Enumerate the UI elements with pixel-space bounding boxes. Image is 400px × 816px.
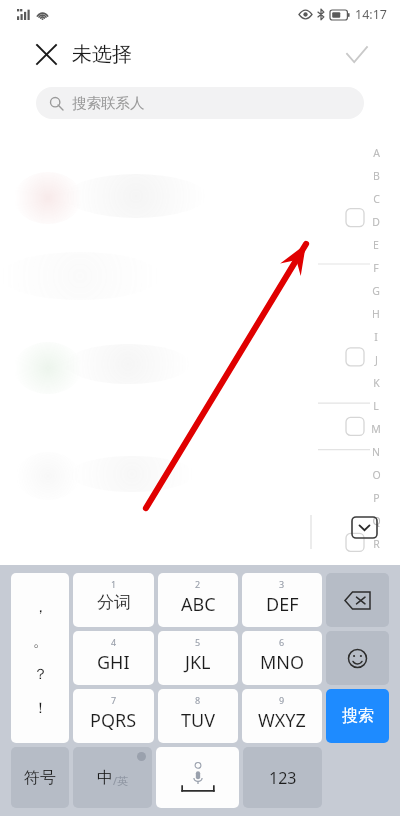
button[interactable]: O — [369, 463, 383, 486]
staticText: 7 — [111, 694, 117, 706]
button[interactable]: 搜索联系人 — [36, 87, 364, 119]
button[interactable]: A — [369, 141, 383, 164]
button[interactable]: 搜索 — [326, 689, 389, 743]
staticText: 搜索联系人 — [72, 94, 145, 112]
staticText: TUV — [181, 708, 215, 733]
staticText: 6 — [279, 636, 285, 648]
button[interactable]: 关闭 — [30, 38, 62, 70]
staticText: F — [373, 261, 379, 275]
button[interactable]: 3 — [242, 573, 322, 627]
staticText: N — [372, 445, 380, 459]
button[interactable]: 6 — [242, 631, 322, 685]
other: 退格 — [326, 573, 389, 627]
staticText: /英 — [113, 773, 129, 788]
staticText: 2 — [195, 578, 201, 590]
button[interactable]: H — [369, 302, 383, 325]
button[interactable]: 7 — [73, 689, 154, 743]
staticText: GHI — [97, 650, 130, 675]
staticText: ABC — [181, 592, 216, 617]
staticText: J — [375, 353, 378, 367]
button[interactable]: 1 — [73, 573, 154, 627]
button[interactable]: M — [369, 417, 383, 440]
button[interactable]: 9 — [242, 689, 322, 743]
staticText: D — [372, 215, 380, 229]
button[interactable]: N — [369, 440, 383, 463]
staticText: K — [373, 376, 380, 390]
staticText: 14:17 — [355, 6, 387, 23]
staticText: 搜索 — [342, 706, 374, 726]
staticText: L — [373, 399, 379, 413]
staticText: O — [372, 468, 381, 482]
staticText: ？ — [33, 665, 48, 684]
staticText: ， — [33, 598, 48, 617]
other: 空格 — [156, 747, 239, 808]
staticText: Q — [372, 514, 381, 528]
button[interactable]: 空格 — [156, 747, 239, 808]
button[interactable]: F — [369, 256, 383, 279]
button[interactable]: B — [369, 164, 383, 187]
button[interactable]: G — [369, 279, 383, 302]
button[interactable]: J — [369, 348, 383, 371]
button[interactable]: 退格 — [326, 573, 389, 627]
staticText: P — [373, 491, 380, 505]
staticText: 5 — [195, 636, 201, 648]
staticText: I — [374, 330, 378, 344]
staticText: 123 — [269, 767, 297, 789]
staticText: ！ — [33, 699, 48, 718]
button[interactable]: 符号 — [11, 747, 69, 808]
staticText: R — [373, 537, 380, 551]
button[interactable]: L — [369, 394, 383, 417]
staticText: 4 — [111, 636, 117, 648]
staticText: 3 — [279, 578, 285, 590]
staticText: A — [373, 146, 380, 160]
staticText: DEF — [266, 592, 299, 617]
button[interactable]: K — [369, 371, 383, 394]
staticText: 1 — [111, 578, 117, 590]
button[interactable]: 123 — [243, 747, 322, 808]
button[interactable]: 8 — [158, 689, 238, 743]
button[interactable]: 中 — [73, 747, 152, 808]
button[interactable]: Q — [369, 509, 383, 532]
other: 表情 — [326, 631, 389, 685]
button[interactable]: 表情 — [326, 631, 389, 685]
staticText: M — [371, 422, 381, 436]
button[interactable]: 确认 — [340, 37, 374, 71]
button[interactable]: P — [369, 486, 383, 509]
button[interactable]: 2 — [158, 573, 238, 627]
staticText: 8 — [195, 694, 201, 706]
button[interactable]: R — [369, 532, 383, 555]
staticText: 。 — [33, 632, 48, 651]
button[interactable]: 4 — [73, 631, 154, 685]
staticText: 中 — [97, 768, 113, 788]
staticText: H — [372, 307, 380, 321]
button[interactable]: D — [369, 210, 383, 233]
staticText: G — [372, 284, 380, 298]
staticText: C — [373, 192, 380, 206]
button[interactable]: 5 — [158, 631, 238, 685]
button[interactable]: 收起 — [352, 517, 377, 538]
button[interactable]: I — [369, 325, 383, 348]
staticText: 未选择 — [72, 42, 132, 67]
staticText: PQRS — [90, 708, 137, 733]
staticText: E — [373, 238, 379, 252]
staticText: WXYZ — [258, 708, 306, 733]
staticText: MNO — [260, 650, 305, 675]
button[interactable]: C — [369, 187, 383, 210]
button[interactable]: E — [369, 233, 383, 256]
button[interactable]: ， — [11, 573, 69, 743]
staticText: JKL — [185, 650, 211, 675]
staticText: B — [373, 169, 380, 183]
staticText: 符号 — [24, 768, 56, 788]
staticText: 分词 — [97, 592, 131, 613]
staticText: 9 — [279, 694, 285, 706]
